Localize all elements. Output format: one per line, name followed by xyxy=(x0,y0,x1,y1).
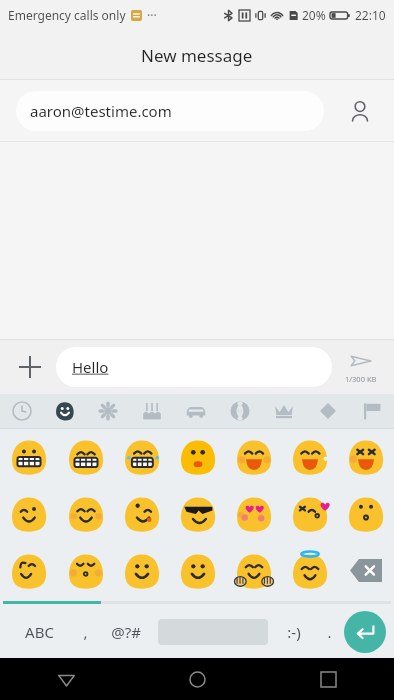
staticText: 1/300 KB xyxy=(345,374,377,384)
button[interactable]: Emoji xyxy=(282,485,338,542)
button[interactable]: Emoji xyxy=(57,485,114,542)
button[interactable]: Send xyxy=(344,611,386,653)
button[interactable]: Food xyxy=(130,394,174,428)
button[interactable]: Emoji xyxy=(282,429,338,485)
button[interactable]: . xyxy=(314,606,344,658)
button[interactable]: , xyxy=(70,606,100,658)
staticText: aaron@testime.com xyxy=(30,101,172,121)
button[interactable]: Emoji xyxy=(338,485,394,542)
button[interactable]: Emoji xyxy=(338,429,394,485)
staticText: 20% xyxy=(302,7,326,23)
button[interactable]: Travel xyxy=(174,394,218,428)
button[interactable]: ABC xyxy=(8,606,70,658)
staticText: :-) xyxy=(287,622,301,642)
button[interactable]: Add attachment xyxy=(10,347,50,387)
button[interactable]: @?# xyxy=(100,606,152,658)
button[interactable]: Emoji xyxy=(114,542,170,599)
button[interactable]: Flags xyxy=(350,394,394,428)
staticText: Emergency calls only xyxy=(8,7,126,23)
staticText: Hello xyxy=(72,357,109,377)
button[interactable]: Home xyxy=(132,658,263,700)
button[interactable]: Recent xyxy=(0,394,43,428)
button[interactable]: Emoji xyxy=(226,429,282,485)
staticText: ABC xyxy=(25,622,54,642)
button[interactable]: Smileys xyxy=(43,394,86,428)
button[interactable]: Recent apps xyxy=(263,658,394,700)
button[interactable]: Emoji xyxy=(226,542,282,599)
staticText: . xyxy=(327,622,332,642)
button[interactable]: Choose contact xyxy=(342,93,378,129)
staticText: , xyxy=(83,622,88,642)
button[interactable]: :-) xyxy=(274,606,314,658)
staticText: @?# xyxy=(111,622,141,642)
button[interactable]: Send xyxy=(338,350,384,384)
button[interactable]: Activities xyxy=(218,394,262,428)
button[interactable]: Emoji xyxy=(170,485,226,542)
button[interactable]: Emoji xyxy=(114,429,170,485)
button[interactable]: Emoji xyxy=(57,542,114,599)
staticText: New message xyxy=(141,44,253,67)
button[interactable]: Hello xyxy=(56,347,332,387)
button[interactable]: Emoji xyxy=(0,542,57,599)
button[interactable]: Symbols xyxy=(306,394,350,428)
button[interactable]: Emoji xyxy=(170,429,226,485)
staticText: ··· xyxy=(147,7,157,23)
button[interactable]: Emoji xyxy=(0,429,57,485)
button[interactable]: Emoji xyxy=(57,429,114,485)
button[interactable]: Back xyxy=(0,658,132,700)
button[interactable]: aaron@testime.com xyxy=(16,91,324,131)
button[interactable]: Emoji xyxy=(226,485,282,542)
button[interactable]: Emoji xyxy=(114,485,170,542)
button[interactable]: Emoji xyxy=(0,485,57,542)
button[interactable]: Nature xyxy=(86,394,130,428)
button[interactable]: Objects xyxy=(262,394,306,428)
button[interactable]: Delete xyxy=(338,542,394,599)
staticText: 22:10 xyxy=(355,7,386,23)
button[interactable]: Emoji xyxy=(282,542,338,599)
button[interactable]: Emoji xyxy=(170,542,226,599)
